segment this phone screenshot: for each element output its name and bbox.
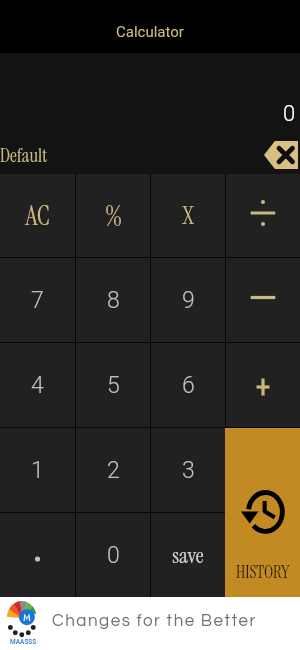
button[interactable]: 9: [151, 258, 225, 342]
button[interactable]: Backspace: [264, 141, 298, 169]
staticText: 5: [107, 372, 120, 399]
staticText: Changes for the Better: [52, 612, 257, 630]
staticText: 0: [107, 542, 120, 569]
staticText: %: [105, 198, 122, 234]
button[interactable]: 2: [76, 428, 150, 512]
staticText: 1: [31, 457, 44, 484]
button[interactable]: 1: [0, 428, 75, 512]
button[interactable]: 7: [0, 258, 75, 342]
button[interactable]: 4: [0, 343, 75, 427]
button[interactable]: Plus: [226, 343, 300, 427]
button[interactable]: Decimal point: [0, 513, 75, 597]
staticText: 6: [182, 372, 195, 399]
button[interactable]: 6: [151, 343, 225, 427]
button[interactable]: Minus: [226, 258, 300, 342]
staticText: 0: [283, 101, 296, 127]
staticText: AC: [25, 198, 50, 233]
button[interactable]: 3: [151, 428, 225, 512]
button[interactable]: 5: [76, 343, 150, 427]
button[interactable]: %: [76, 174, 150, 257]
staticText: 8: [107, 287, 120, 314]
staticText: X: [181, 200, 195, 231]
button[interactable]: MAASSS: [0, 597, 300, 650]
button[interactable]: 0: [76, 513, 150, 597]
button[interactable]: save: [151, 513, 225, 597]
staticText: Default: [0, 143, 48, 168]
button[interactable]: 8: [76, 258, 150, 342]
staticText: 2: [107, 457, 120, 484]
button[interactable]: X: [151, 174, 225, 257]
staticText: save: [172, 541, 204, 570]
button[interactable]: HISTORY: [225, 428, 300, 597]
staticText: 7: [31, 287, 44, 314]
button[interactable]: Divide: [226, 174, 300, 257]
staticText: 4: [31, 372, 44, 399]
button[interactable]: Calculator: [0, 0, 300, 53]
staticText: Calculator: [116, 23, 184, 41]
staticText: 3: [182, 457, 195, 484]
staticText: 9: [182, 287, 195, 314]
button[interactable]: AC: [0, 174, 75, 257]
staticText: HISTORY: [236, 561, 290, 583]
staticText: MAASSS: [10, 638, 37, 646]
